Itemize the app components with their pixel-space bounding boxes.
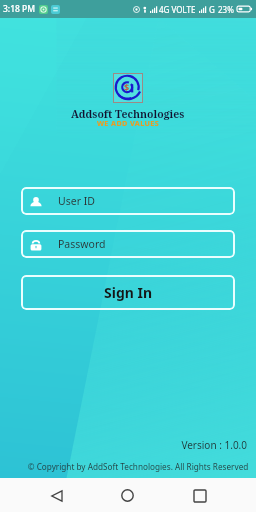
staticText: 3:18 PM bbox=[3, 3, 36, 15]
staticText: © Copyright by AddSoft Technologies. All… bbox=[20, 461, 256, 472]
button[interactable]: Back bbox=[41, 480, 72, 511]
staticText: Sign In bbox=[104, 283, 153, 302]
staticText: Version : 1.0.0 bbox=[0, 438, 247, 452]
staticText: 4G VOLTE bbox=[159, 4, 196, 15]
button[interactable]: Password bbox=[21, 230, 235, 258]
button[interactable]: Recent apps bbox=[184, 480, 215, 511]
button[interactable]: User ID bbox=[21, 187, 235, 215]
button[interactable]: Sign In bbox=[21, 275, 235, 310]
button[interactable]: Home bbox=[112, 480, 143, 511]
staticText: WE ADD VALUES bbox=[97, 118, 160, 128]
staticText: Password bbox=[58, 237, 106, 251]
staticText: User ID bbox=[58, 194, 95, 208]
staticText: G bbox=[209, 4, 215, 15]
staticText: $ bbox=[124, 81, 130, 93]
staticText: 23% bbox=[218, 4, 234, 15]
staticText: Addsoft Technologies bbox=[71, 107, 185, 121]
